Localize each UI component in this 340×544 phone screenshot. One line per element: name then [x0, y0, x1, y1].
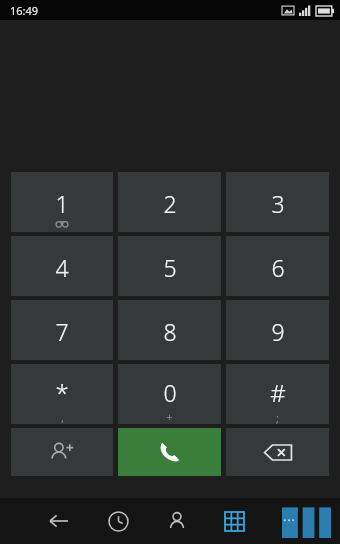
button[interactable]: * [11, 364, 113, 424]
staticText: # [270, 376, 286, 409]
staticText: 16:49 [10, 3, 39, 18]
staticText: ; [276, 410, 279, 424]
staticText: 7 [55, 316, 69, 347]
button[interactable]: 2 [118, 172, 221, 232]
staticText: 2 [163, 188, 177, 219]
button[interactable]: Call [118, 428, 221, 476]
staticText: * [55, 376, 69, 409]
button[interactable]: Call history [97, 500, 139, 542]
button[interactable]: 5 [118, 236, 221, 296]
staticText: 9 [271, 316, 285, 347]
staticText: 0 [163, 377, 177, 408]
button[interactable]: 0 [118, 364, 221, 424]
staticText: , [61, 410, 64, 424]
staticText: 1 [55, 188, 69, 219]
button[interactable]: 6 [226, 236, 329, 296]
button[interactable]: Overview [282, 504, 338, 538]
button[interactable]: Back [38, 500, 80, 542]
button[interactable]: 8 [118, 300, 221, 360]
staticText: + [166, 409, 173, 424]
button[interactable]: Add contact [11, 428, 113, 476]
staticText: 8 [163, 316, 177, 347]
staticText: 6 [271, 252, 285, 283]
button[interactable]: 4 [11, 236, 113, 296]
button[interactable]: 3 [226, 172, 329, 232]
staticText: 5 [163, 252, 177, 283]
button[interactable]: Keypad [213, 500, 255, 542]
button[interactable]: 7 [11, 300, 113, 360]
button[interactable]: 1 [11, 172, 113, 232]
staticText: 4 [55, 252, 69, 283]
button[interactable]: Backspace [226, 428, 329, 476]
staticText: 3 [271, 188, 285, 219]
button[interactable]: Contacts [156, 500, 198, 542]
button[interactable]: # [226, 364, 329, 424]
button[interactable]: 9 [226, 300, 329, 360]
